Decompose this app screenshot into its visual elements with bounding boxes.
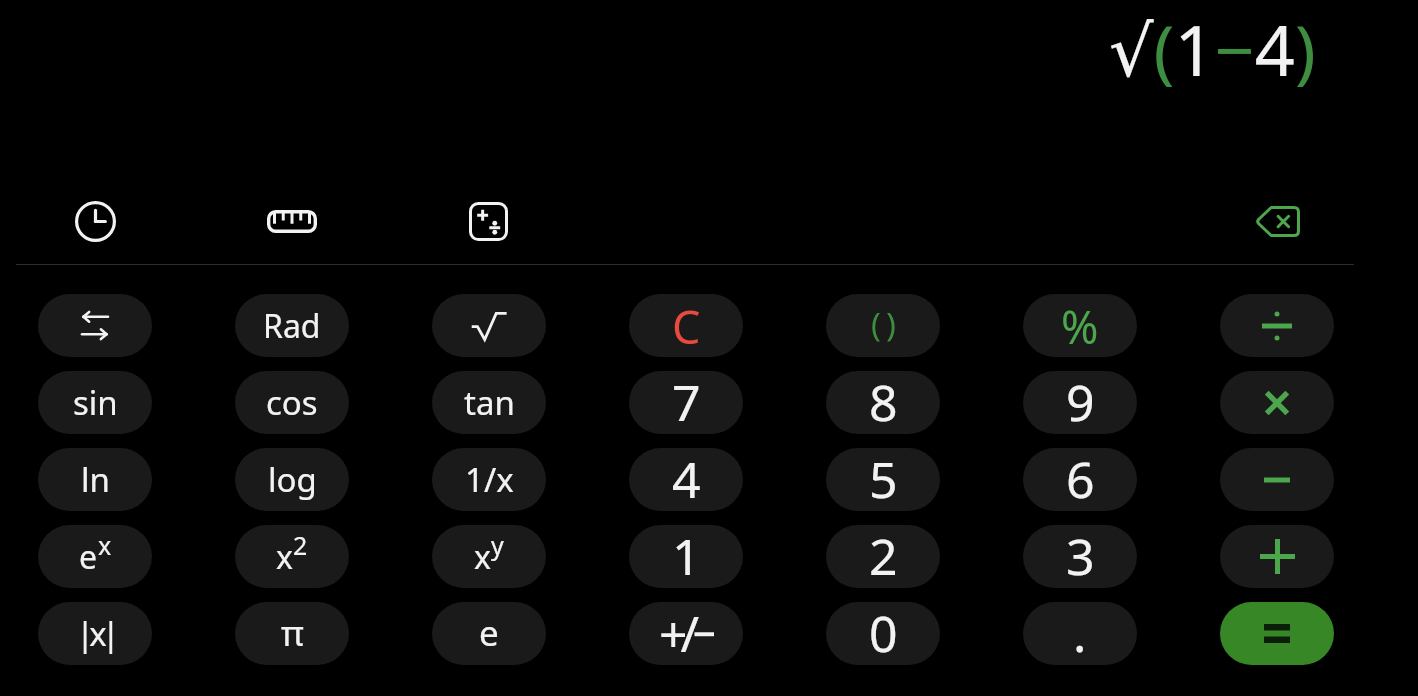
staticText: 6 bbox=[1066, 448, 1095, 508]
button[interactable]: 9 bbox=[1023, 371, 1137, 434]
button[interactable]: tan bbox=[432, 371, 546, 434]
button[interactable]: 0 bbox=[826, 602, 940, 665]
staticText: +/− bbox=[659, 602, 714, 662]
staticText: 0 bbox=[869, 602, 898, 662]
staticText: % bbox=[1061, 296, 1099, 357]
staticText: 1 bbox=[672, 525, 701, 585]
staticText: log bbox=[268, 457, 317, 502]
staticText: 8 bbox=[869, 371, 898, 431]
button[interactable]: π bbox=[235, 602, 349, 665]
staticText: 9 bbox=[1066, 371, 1095, 431]
button[interactable]: . bbox=[1023, 602, 1137, 665]
staticText: ln bbox=[81, 457, 110, 502]
button[interactable]: Scientific keypad bbox=[452, 190, 524, 252]
button[interactable]: Square root bbox=[432, 294, 546, 357]
staticText: x bbox=[474, 535, 491, 579]
button[interactable]: 1/x bbox=[432, 448, 546, 511]
staticText: C bbox=[672, 296, 701, 357]
button[interactable]: sin bbox=[38, 371, 152, 434]
staticText: . bbox=[1073, 602, 1087, 662]
button[interactable]: Backspace bbox=[1241, 190, 1313, 252]
staticText: √(1−4) bbox=[1109, 1, 1316, 96]
staticText: x bbox=[98, 528, 112, 562]
button[interactable]: 2 bbox=[826, 525, 940, 588]
staticText: π bbox=[281, 609, 304, 657]
button[interactable]: Unit converter bbox=[256, 190, 328, 252]
button[interactable]: Multiply bbox=[1220, 371, 1334, 434]
staticText: Rad bbox=[263, 304, 321, 348]
button[interactable]: % bbox=[1023, 294, 1137, 357]
button[interactable]: |x| bbox=[38, 602, 152, 665]
button[interactable]: 6 bbox=[1023, 448, 1137, 511]
button[interactable]: 4 bbox=[629, 448, 743, 511]
staticText: cos bbox=[266, 380, 318, 425]
button[interactable]: 5 bbox=[826, 448, 940, 511]
button[interactable]: Plus bbox=[1220, 525, 1334, 588]
button[interactable]: Minus bbox=[1220, 448, 1334, 511]
button[interactable]: log bbox=[235, 448, 349, 511]
staticText: x bbox=[276, 535, 293, 579]
staticText: 1/x bbox=[465, 457, 514, 502]
button[interactable]: 7 bbox=[629, 371, 743, 434]
staticText: 4 bbox=[672, 448, 701, 508]
button[interactable]: x^y bbox=[432, 525, 546, 588]
staticText: 3 bbox=[1066, 525, 1095, 585]
staticText: () bbox=[871, 302, 901, 347]
button[interactable]: Swap bbox=[38, 294, 152, 357]
button[interactable]: e bbox=[432, 602, 546, 665]
button[interactable]: History bbox=[59, 190, 131, 252]
button[interactable]: ln bbox=[38, 448, 152, 511]
staticText: 2 bbox=[869, 525, 898, 585]
button[interactable]: 8 bbox=[826, 371, 940, 434]
button[interactable]: Equals bbox=[1220, 602, 1334, 665]
button[interactable]: 1 bbox=[629, 525, 743, 588]
staticText: 7 bbox=[672, 371, 701, 431]
button[interactable]: Rad bbox=[235, 294, 349, 357]
button[interactable]: () bbox=[826, 294, 940, 357]
staticText: sin bbox=[73, 380, 118, 425]
button[interactable]: +/− bbox=[629, 602, 743, 665]
staticText: y bbox=[491, 528, 504, 562]
button[interactable]: cos bbox=[235, 371, 349, 434]
staticText: tan bbox=[464, 380, 515, 425]
staticText: 5 bbox=[869, 448, 898, 508]
staticText: e bbox=[79, 535, 98, 579]
button[interactable]: 3 bbox=[1023, 525, 1137, 588]
button[interactable]: C bbox=[629, 294, 743, 357]
staticText: e bbox=[479, 609, 499, 657]
staticText: 2 bbox=[293, 528, 308, 562]
button[interactable]: e^x bbox=[38, 525, 152, 588]
button[interactable]: Divide bbox=[1220, 294, 1334, 357]
button[interactable]: x2 bbox=[235, 525, 349, 588]
staticText: |x| bbox=[76, 611, 115, 656]
